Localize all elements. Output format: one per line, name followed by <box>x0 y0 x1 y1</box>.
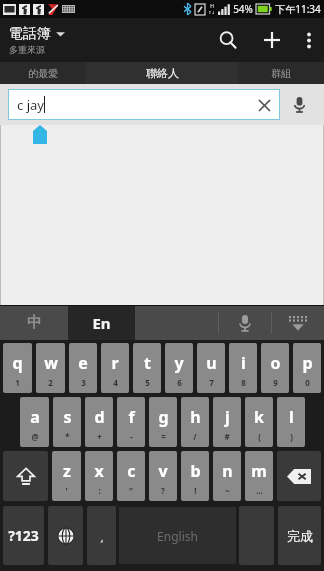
button[interactable]: 電話簿 <box>9 25 65 55</box>
button[interactable]: k <box>245 397 273 447</box>
button[interactable]: a <box>20 397 49 447</box>
button[interactable]: Voice input <box>219 305 271 340</box>
staticText: ' <box>65 485 68 496</box>
staticText: ! <box>194 485 197 496</box>
staticText: ( <box>258 431 261 442</box>
staticText: ) <box>290 431 293 442</box>
button[interactable]: w <box>36 343 65 393</box>
button[interactable]: u <box>197 343 225 393</box>
staticText: @ <box>31 431 39 442</box>
staticText: / <box>193 431 197 442</box>
staticText: z <box>63 460 71 482</box>
staticText: 下午11:34 <box>275 2 321 16</box>
staticText: s <box>63 406 72 428</box>
button[interactable]: , <box>87 506 116 565</box>
staticText: y <box>174 352 184 374</box>
button[interactable]: e <box>69 343 97 393</box>
button[interactable]: z <box>52 451 81 501</box>
staticText: 1 <box>15 377 20 388</box>
button[interactable]: f <box>117 397 145 447</box>
button[interactable]: c jay <box>8 89 280 120</box>
staticText: 多重來源 <box>9 44 45 55</box>
staticText: x <box>94 460 104 482</box>
staticText: a <box>30 406 40 428</box>
staticText: " <box>129 485 133 496</box>
button[interactable]: 聯絡人 <box>92 62 232 84</box>
button[interactable]: English <box>119 507 236 564</box>
button[interactable]: ?123 <box>3 506 44 565</box>
staticText: v <box>158 460 168 482</box>
button[interactable]: En <box>68 305 135 340</box>
staticText: c <box>127 460 136 482</box>
button[interactable]: l <box>277 397 305 447</box>
staticText: 3 <box>81 377 86 388</box>
staticText: 聯絡人 <box>146 66 179 80</box>
button[interactable]: b <box>181 451 209 501</box>
staticText: q <box>12 352 23 374</box>
staticText: En <box>92 313 111 333</box>
staticText: - <box>130 431 133 442</box>
staticText: H <box>210 3 214 10</box>
button[interactable]: g <box>149 397 177 447</box>
button[interactable]: Shift <box>3 451 48 501</box>
staticText: 8 <box>241 377 246 388</box>
button[interactable]: n <box>213 451 241 501</box>
staticText: g <box>158 406 169 428</box>
button[interactable]: o <box>261 343 289 393</box>
button[interactable]: t <box>133 343 161 393</box>
staticText: + <box>97 431 102 442</box>
staticText: 4 <box>113 377 118 388</box>
button[interactable]: Backspace <box>277 451 321 501</box>
staticText: 6 <box>177 377 182 388</box>
button[interactable]: q <box>3 343 32 393</box>
staticText: h <box>190 406 201 428</box>
staticText: 2 <box>48 377 53 388</box>
button[interactable]: Change language <box>48 506 83 565</box>
staticText: 的最愛 <box>28 67 58 80</box>
staticText: , <box>100 527 104 545</box>
staticText: : <box>98 485 101 496</box>
staticText: ? <box>161 485 165 496</box>
button[interactable]: c <box>117 451 145 501</box>
staticText: o <box>270 352 281 374</box>
staticText: 電話簿 <box>9 25 51 43</box>
button[interactable]: s <box>53 397 81 447</box>
button[interactable]: i <box>229 343 257 393</box>
button[interactable]: m <box>245 451 273 501</box>
button[interactable]: r <box>101 343 129 393</box>
button[interactable]: Voice search <box>280 89 318 120</box>
button[interactable]: p <box>293 343 321 393</box>
button[interactable]: v <box>149 451 177 501</box>
button[interactable]: 的最愛 <box>0 62 86 84</box>
button[interactable]: Clear text <box>251 92 277 118</box>
button[interactable]: j <box>213 397 241 447</box>
staticText: # <box>224 431 230 442</box>
staticText: = <box>161 431 166 442</box>
button[interactable]: x <box>85 451 113 501</box>
staticText: 群組 <box>271 67 291 80</box>
staticText: u <box>206 352 217 374</box>
staticText: c jay <box>17 96 44 114</box>
staticText: k <box>254 406 264 428</box>
button[interactable]: 完成 <box>278 506 321 565</box>
button[interactable]: Search <box>206 18 250 62</box>
staticText: 9 <box>273 377 278 388</box>
button[interactable]: h <box>181 397 209 447</box>
button[interactable]: Add contact <box>250 18 294 62</box>
staticText: English <box>157 528 198 544</box>
button[interactable]: 群組 <box>238 62 324 84</box>
staticText: ↑↓ <box>208 10 215 15</box>
staticText: 7 <box>209 377 214 388</box>
button[interactable]: 中 <box>0 305 68 340</box>
button[interactable]: Hide keyboard <box>272 305 324 340</box>
staticText: t <box>144 352 151 374</box>
button[interactable]: More options <box>294 25 324 55</box>
staticText: 5 <box>145 377 150 388</box>
staticText: j <box>225 406 230 428</box>
staticText: 0 <box>305 377 310 388</box>
button[interactable]: y <box>165 343 193 393</box>
staticText: l <box>289 406 294 428</box>
staticText: 中 <box>27 313 42 332</box>
button[interactable]: d <box>85 397 113 447</box>
